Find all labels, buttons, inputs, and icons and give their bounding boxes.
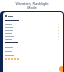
button[interactable] (5, 23, 63, 26)
staticText: Vibration, Flashlight Mode (15, 1, 49, 10)
button[interactable] (5, 45, 63, 49)
button[interactable] (5, 35, 63, 38)
button[interactable] (5, 15, 63, 17)
button[interactable] (5, 32, 63, 35)
button[interactable] (5, 29, 63, 32)
button[interactable] (5, 49, 63, 53)
button[interactable]: Flashlight (59, 66, 63, 72)
button[interactable] (5, 38, 63, 41)
button[interactable] (5, 53, 63, 57)
button[interactable] (5, 26, 63, 29)
